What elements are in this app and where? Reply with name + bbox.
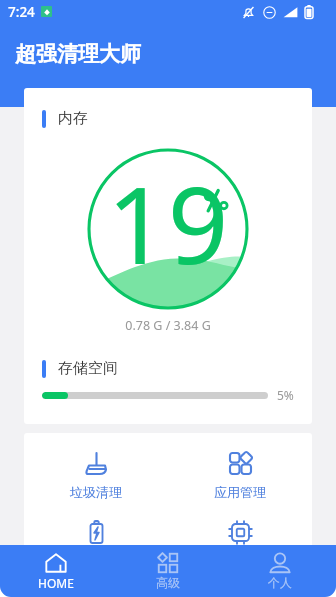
button[interactable]: 省电管理 bbox=[24, 502, 168, 569]
staticText: 7:24 bbox=[8, 3, 35, 21]
staticText: 存储空间 bbox=[58, 359, 118, 378]
button[interactable]: 应用管理 bbox=[168, 433, 312, 500]
staticText: 个人 bbox=[268, 575, 292, 590]
staticText: 超强清理大师 bbox=[15, 41, 141, 67]
staticText: 垃圾清理 bbox=[70, 484, 122, 500]
staticText: 0.78 G / 3.84 G bbox=[24, 317, 312, 334]
staticText: 19 bbox=[107, 151, 229, 295]
button[interactable]: Profile bbox=[224, 545, 336, 590]
staticText: HOME bbox=[38, 575, 74, 591]
button[interactable]: Advanced bbox=[112, 545, 224, 590]
staticText: 5% bbox=[277, 387, 294, 403]
staticText: 高级 bbox=[156, 575, 180, 590]
button[interactable]: 手机降温 bbox=[168, 502, 312, 569]
staticText: 内存 bbox=[58, 109, 88, 128]
button[interactable]: Home bbox=[0, 545, 112, 591]
button[interactable]: 垃圾清理 bbox=[24, 433, 168, 500]
staticText: 应用管理 bbox=[214, 484, 266, 500]
